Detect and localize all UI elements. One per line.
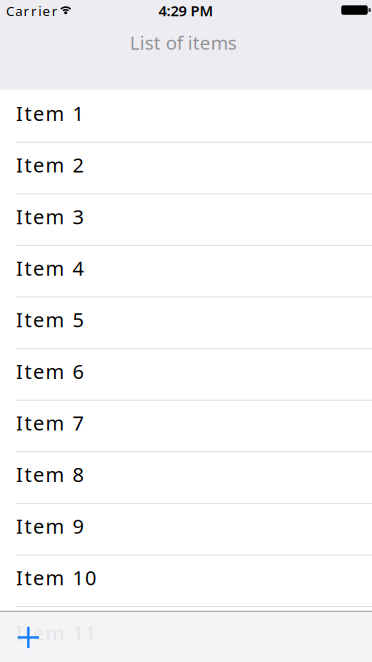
button[interactable]: Item 8	[0, 451, 372, 503]
button[interactable]: Item 9	[0, 503, 372, 554]
staticText: Item 4	[16, 255, 83, 281]
staticText: Item 10	[16, 564, 96, 591]
staticText: Item 5	[16, 306, 83, 333]
staticText: Item 3	[16, 203, 83, 230]
staticText: Carrier	[6, 2, 58, 20]
staticText: Item 2	[16, 152, 83, 178]
staticText: Item 11	[16, 619, 96, 646]
button[interactable]: Item 2	[0, 142, 372, 193]
staticText: Item 1	[16, 100, 83, 127]
staticText: Item 8	[16, 461, 83, 488]
button[interactable]: Item 1	[0, 90, 372, 142]
button[interactable]: Item 5	[0, 296, 372, 348]
button[interactable]: Item 6	[0, 348, 372, 400]
staticText: Item 9	[16, 513, 83, 539]
button[interactable]: Item 3	[0, 193, 372, 245]
staticText: Item 7	[16, 409, 83, 436]
staticText: List of items	[130, 30, 237, 55]
button[interactable]: Item 4	[0, 245, 372, 296]
staticText: Item 6	[16, 358, 83, 384]
button[interactable]: Add	[18, 627, 39, 648]
button[interactable]: Item 7	[0, 400, 372, 451]
button[interactable]: Item 10	[0, 554, 372, 606]
staticText: 4:29 PM	[158, 1, 213, 20]
